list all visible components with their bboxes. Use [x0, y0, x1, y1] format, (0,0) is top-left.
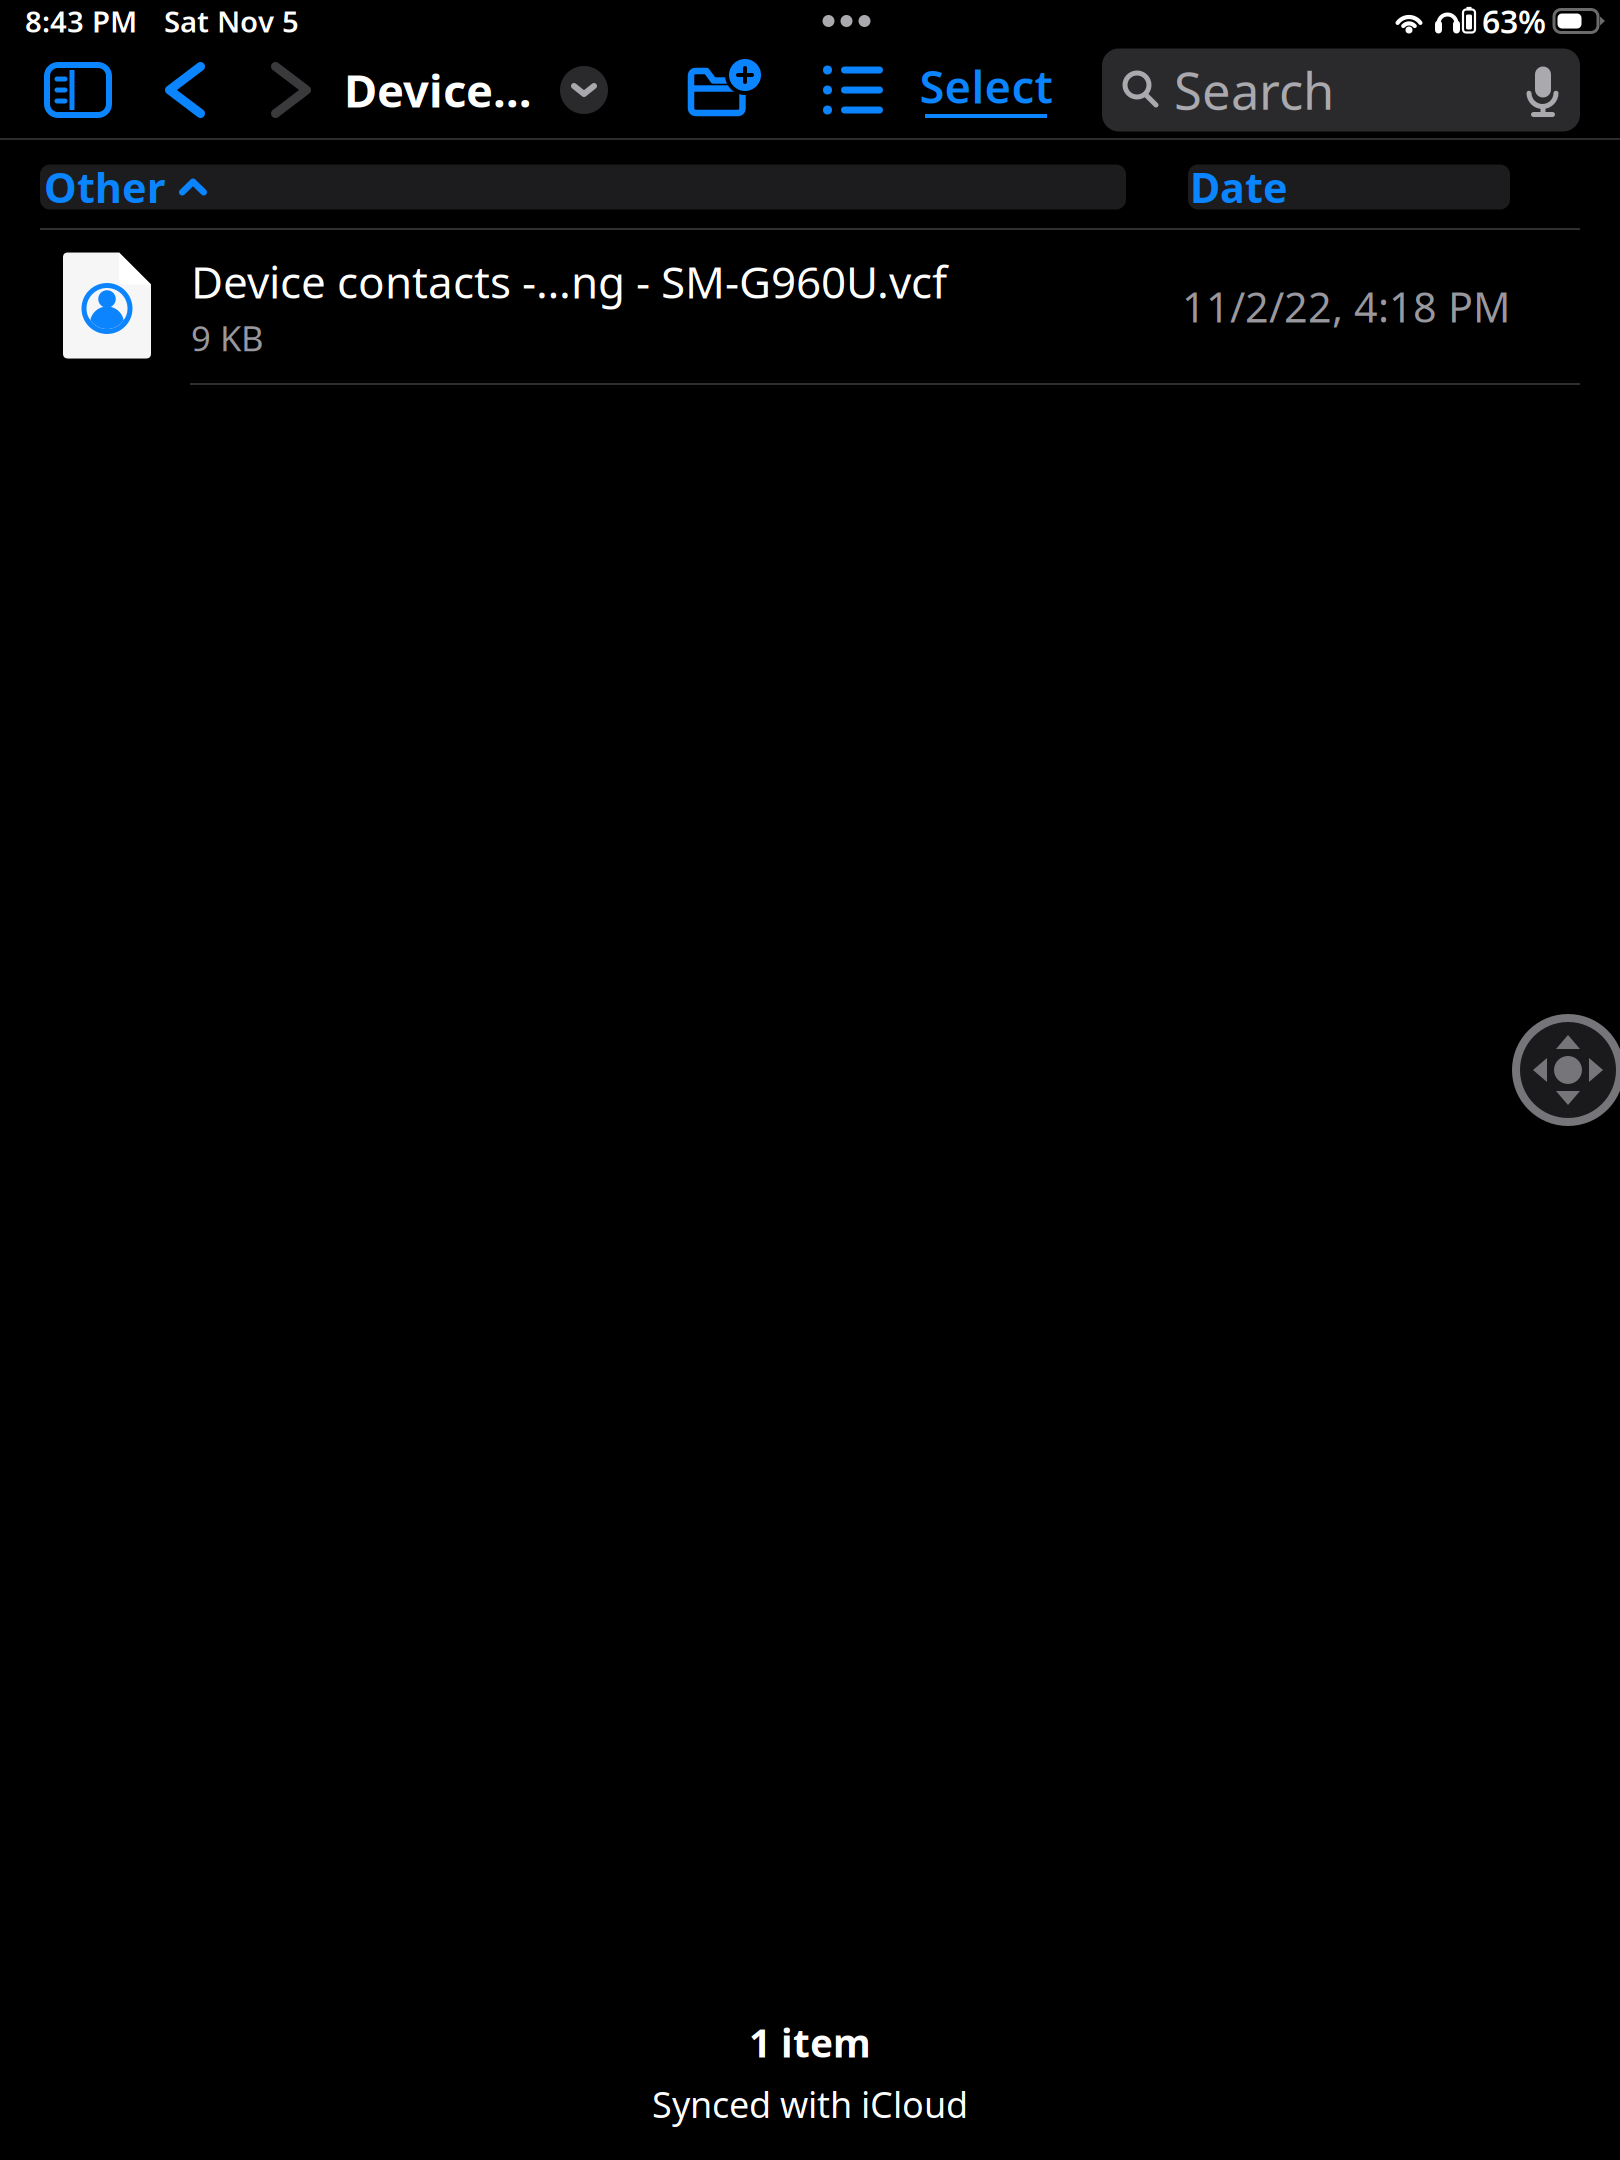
- staticText: Sat Nov 5: [164, 1, 299, 40]
- button[interactable]: Toggle Sidebar: [24, 44, 132, 136]
- button[interactable]: Forward: [238, 44, 344, 136]
- button[interactable]: View Options: [788, 44, 896, 136]
- button[interactable]: Device…: [344, 44, 608, 136]
- button[interactable]: Select: [896, 44, 1048, 136]
- staticText: 63%: [1482, 0, 1546, 42]
- staticText: Date: [1190, 160, 1288, 214]
- button[interactable]: Device contacts -…ng - SM-G960U.vcf: [0, 230, 1620, 383]
- staticText: Select: [919, 56, 1052, 116]
- staticText: Other: [44, 160, 165, 214]
- staticText: Device…: [344, 60, 532, 120]
- staticText: 8:43 PM: [25, 1, 137, 40]
- staticText: Search: [1174, 56, 1334, 124]
- staticText: 9 KB: [191, 315, 264, 361]
- staticText: 1 item: [749, 2017, 871, 2068]
- button[interactable]: Search: [1102, 48, 1580, 131]
- button[interactable]: AssistiveTouch: [1512, 1014, 1620, 1126]
- button[interactable]: New Folder: [692, 44, 788, 136]
- button[interactable]: Date: [1188, 164, 1510, 209]
- staticText: Synced with iCloud: [652, 2080, 968, 2128]
- button[interactable]: Back: [132, 44, 238, 136]
- staticText: 11/2/22, 4:18 PM: [1182, 279, 1510, 334]
- staticText: Device contacts -…ng - SM-G960U.vcf: [191, 252, 947, 311]
- button[interactable]: Other: [40, 164, 1126, 209]
